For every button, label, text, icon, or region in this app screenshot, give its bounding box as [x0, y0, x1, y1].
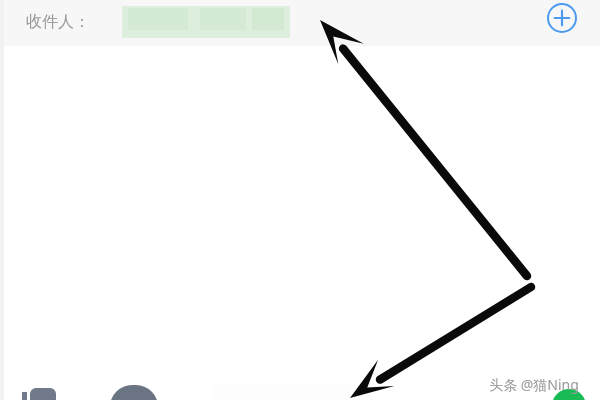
button[interactable]	[212, 383, 372, 400]
button[interactable]	[122, 6, 290, 38]
button[interactable]	[110, 385, 158, 400]
button[interactable]: Add recipient	[546, 2, 578, 34]
button[interactable]	[0, 0, 600, 46]
staticText: 头条 @猫Ning	[489, 375, 579, 394]
button[interactable]	[30, 388, 56, 400]
staticText: 收件人：	[26, 12, 90, 32]
